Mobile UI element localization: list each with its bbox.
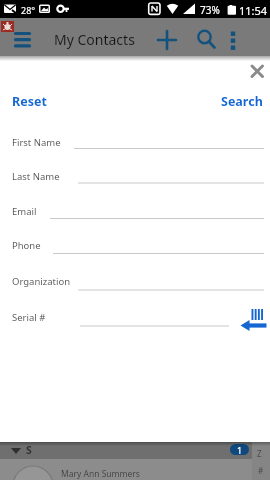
- button[interactable]: [246, 60, 268, 80]
- button[interactable]: [226, 29, 240, 51]
- staticText: Serial #: [12, 311, 46, 324]
- staticText: 1: [237, 444, 243, 455]
- button[interactable]: [156, 29, 178, 51]
- staticText: Reset: [12, 93, 47, 110]
- staticText: Email: [12, 205, 37, 218]
- button[interactable]: Search: [221, 93, 263, 110]
- staticText: My Contacts: [54, 30, 135, 49]
- button[interactable]: S: [0, 442, 252, 459]
- button[interactable]: [195, 29, 217, 51]
- staticText: Search: [221, 93, 263, 110]
- staticText: Phone: [12, 239, 41, 252]
- staticText: First Name: [12, 136, 61, 149]
- staticText: S: [26, 443, 32, 457]
- staticText: 11:54: [239, 3, 268, 18]
- staticText: 28°: [21, 4, 36, 16]
- staticText: Z: [257, 448, 262, 459]
- staticText: Organization: [12, 275, 71, 288]
- button[interactable]: Reset: [12, 93, 47, 110]
- staticText: #: [258, 465, 264, 476]
- staticText: 73%: [200, 3, 220, 17]
- button[interactable]: [10, 29, 36, 53]
- staticText: Last Name: [12, 170, 60, 183]
- button[interactable]: [238, 306, 268, 332]
- staticText: Mary Ann Summers: [61, 468, 140, 480]
